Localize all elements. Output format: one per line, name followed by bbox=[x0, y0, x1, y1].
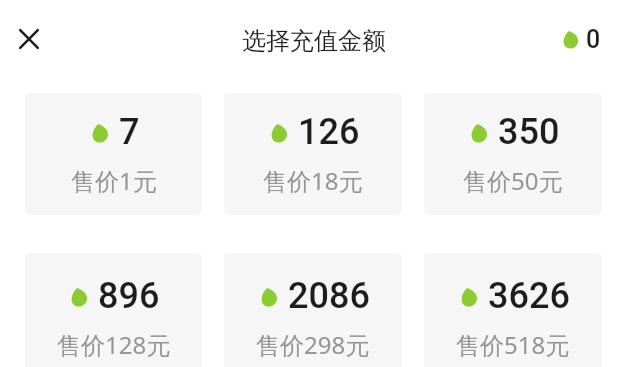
button[interactable]: 3626 bbox=[424, 253, 602, 367]
staticText: 售价50元 bbox=[463, 164, 563, 197]
staticText: 896 bbox=[98, 275, 160, 317]
staticText: 3626 bbox=[488, 275, 570, 317]
button[interactable]: 0 bbox=[563, 25, 601, 54]
staticText: 350 bbox=[498, 111, 560, 153]
staticText: 售价518元 bbox=[456, 328, 570, 361]
staticText: 126 bbox=[298, 111, 360, 153]
staticText: 7 bbox=[119, 111, 140, 153]
staticText: 售价1元 bbox=[71, 164, 157, 197]
staticText: 售价18元 bbox=[263, 164, 363, 197]
staticText: 售价128元 bbox=[57, 328, 171, 361]
staticText: 0 bbox=[586, 25, 601, 54]
button[interactable]: 7 bbox=[25, 93, 202, 215]
button[interactable]: 896 bbox=[25, 253, 202, 367]
button[interactable]: Close bbox=[7, 17, 51, 61]
button[interactable]: 126 bbox=[224, 93, 402, 215]
staticText: 选择充值金额 bbox=[242, 26, 386, 56]
button[interactable]: 2086 bbox=[224, 253, 402, 367]
staticText: 2086 bbox=[288, 275, 370, 317]
button[interactable]: 350 bbox=[424, 93, 602, 215]
staticText: 售价298元 bbox=[256, 328, 370, 361]
